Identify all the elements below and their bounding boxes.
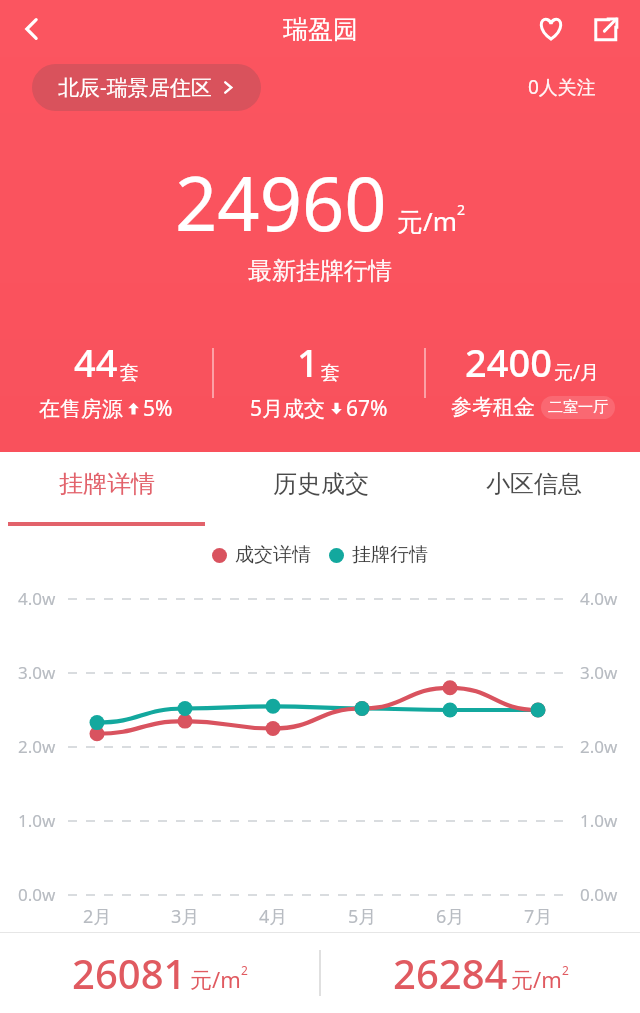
- staticText: 67%: [346, 394, 388, 423]
- staticText: 在售房源: [39, 396, 123, 422]
- staticText: 元/m: [511, 964, 562, 994]
- staticText: 2.0w: [580, 735, 618, 758]
- button[interactable]: Share: [580, 4, 630, 54]
- staticText: 元/m: [397, 203, 457, 239]
- staticText: 套: [321, 361, 340, 385]
- staticText: 挂牌行情: [352, 543, 428, 567]
- button[interactable]: 历史成交: [214, 452, 427, 524]
- staticText: 最新挂牌行情: [0, 256, 640, 286]
- staticText: 44: [74, 336, 118, 388]
- staticText: 1.0w: [580, 809, 618, 832]
- staticText: 历史成交: [273, 469, 369, 499]
- staticText: 套: [120, 361, 139, 385]
- button[interactable]: 44: [0, 336, 212, 423]
- staticText: 5月: [348, 904, 377, 929]
- button[interactable]: Favorite: [526, 4, 576, 54]
- staticText: 二室一厅: [548, 398, 608, 417]
- staticText: 3月: [171, 904, 200, 929]
- staticText: 参考租金: [451, 394, 535, 420]
- staticText: 3.0w: [18, 661, 56, 684]
- staticText: 2: [457, 200, 466, 219]
- staticText: 0.0w: [18, 883, 56, 906]
- staticText: 24960: [175, 152, 387, 253]
- staticText: 2.0w: [18, 735, 56, 758]
- button[interactable]: 小区信息: [427, 452, 640, 524]
- staticText: 1: [297, 336, 319, 388]
- button[interactable]: Back: [6, 3, 58, 55]
- staticText: 2月: [83, 904, 112, 929]
- staticText: 0人关注: [528, 74, 596, 100]
- staticText: 2: [241, 962, 248, 978]
- staticText: 5%: [143, 394, 173, 423]
- staticText: 1.0w: [18, 809, 56, 832]
- staticText: 26081: [72, 946, 187, 1000]
- staticText: 成交详情: [235, 543, 311, 567]
- staticText: 4.0w: [580, 587, 618, 610]
- staticText: 挂牌详情: [59, 469, 155, 499]
- staticText: 0.0w: [580, 883, 618, 906]
- button[interactable]: 2400: [425, 336, 640, 420]
- staticText: 元/月: [554, 359, 600, 385]
- staticText: 5月成交: [250, 394, 326, 423]
- button[interactable]: 1: [213, 336, 424, 423]
- staticText: 3.0w: [580, 661, 618, 684]
- staticText: 2: [562, 962, 569, 978]
- button[interactable]: 北辰-瑞景居住区: [32, 64, 261, 111]
- staticText: 4.0w: [18, 587, 56, 610]
- staticText: 2400: [465, 336, 552, 388]
- button[interactable]: 26081: [0, 933, 319, 1013]
- staticText: 4月: [259, 904, 288, 929]
- staticText: 元/m: [190, 964, 241, 994]
- staticText: 7月: [524, 904, 553, 929]
- staticText: 26284: [393, 946, 508, 1000]
- staticText: 瑞盈园: [283, 14, 358, 45]
- button[interactable]: 挂牌详情: [0, 452, 214, 524]
- staticText: 小区信息: [486, 469, 582, 499]
- button[interactable]: 26284: [321, 933, 640, 1013]
- staticText: 北辰-瑞景居住区: [58, 73, 212, 102]
- staticText: 6月: [436, 904, 465, 929]
